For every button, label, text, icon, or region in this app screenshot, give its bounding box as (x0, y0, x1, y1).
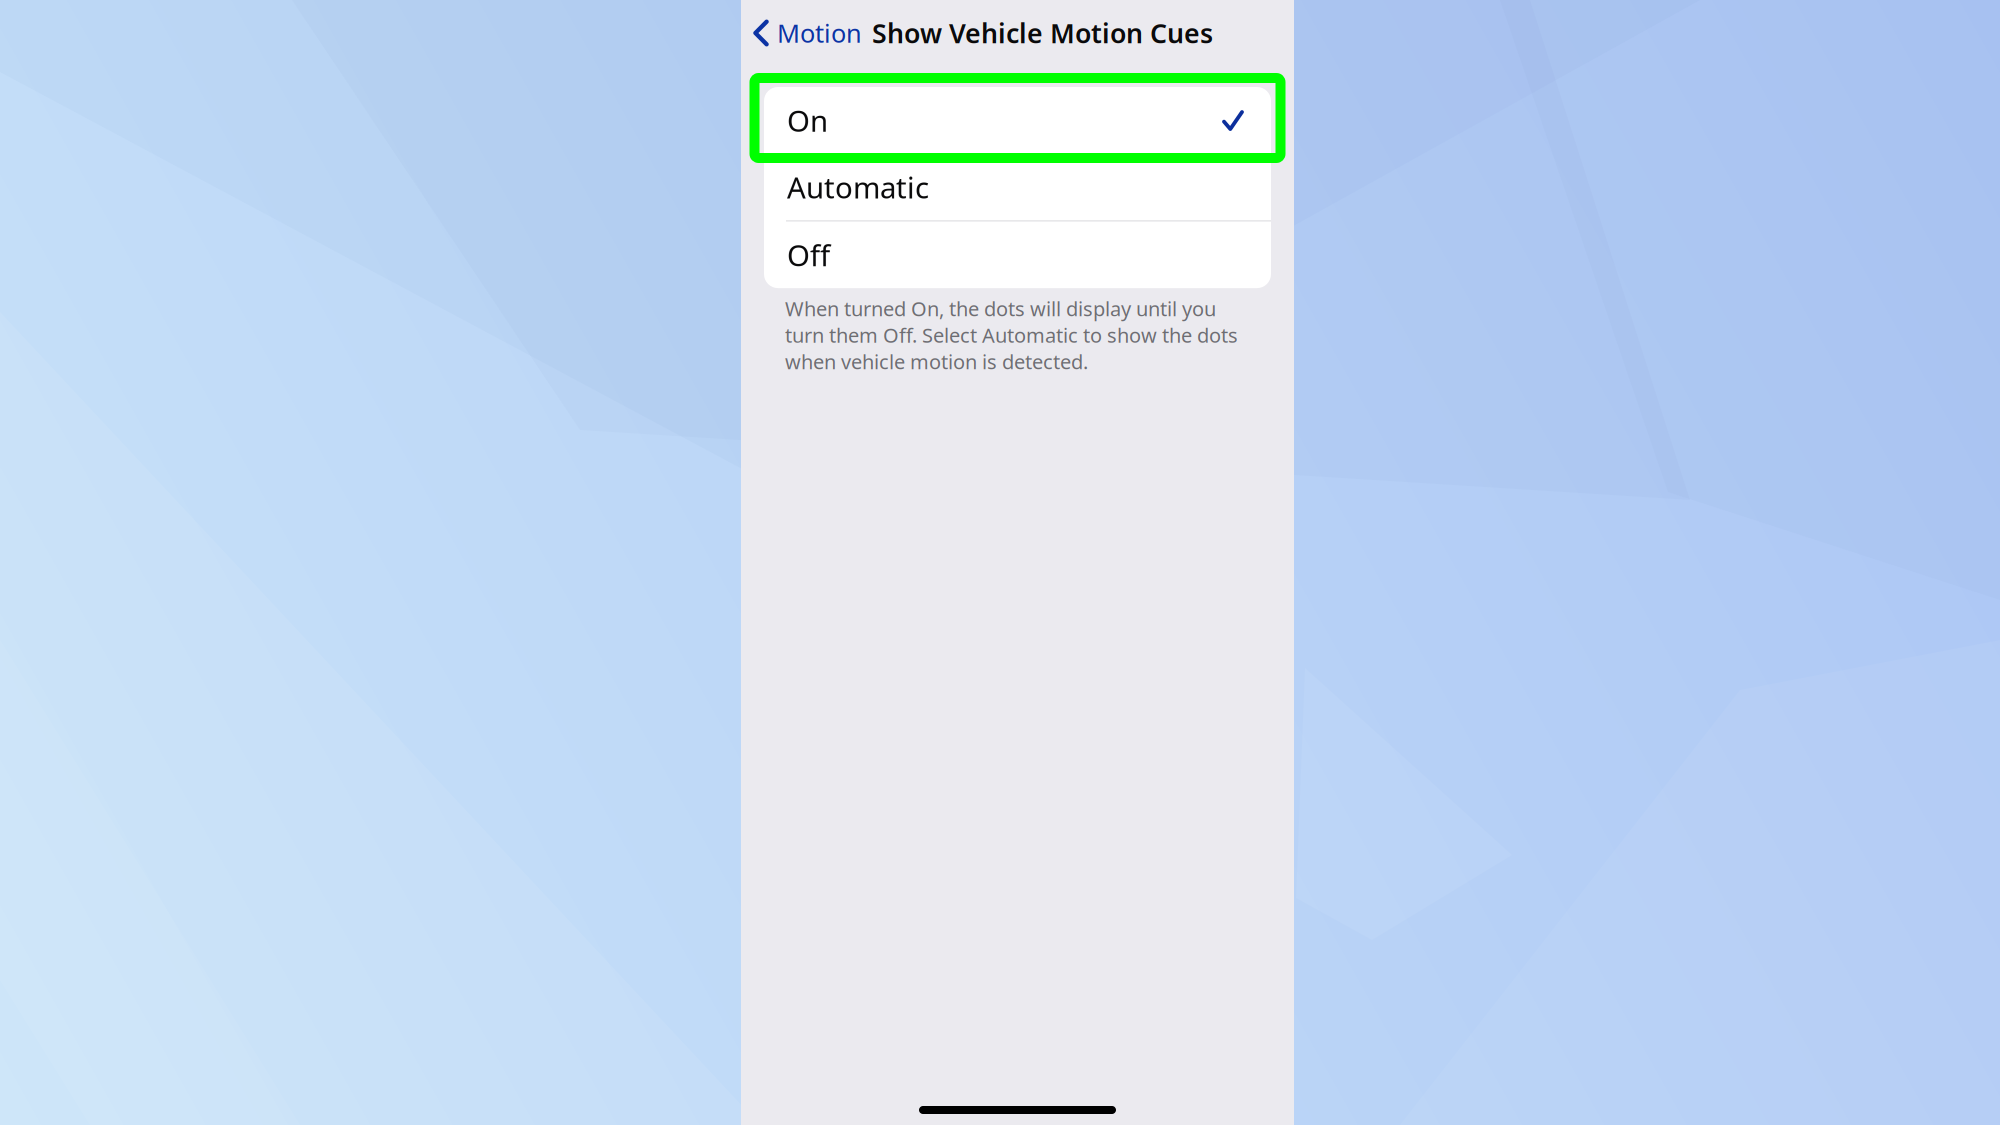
button[interactable]: Automatic (764, 154, 1271, 220)
staticText: On (787, 101, 828, 140)
button[interactable]: On (764, 87, 1271, 154)
button[interactable]: Motion (741, 1, 862, 65)
staticText: When turned On, the dots will display un… (785, 295, 1238, 375)
staticText: Motion (777, 16, 862, 50)
button[interactable]: Off (764, 221, 1271, 288)
staticText: Off (787, 235, 830, 274)
staticText: Automatic (787, 168, 929, 207)
staticText: Show Vehicle Motion Cues (872, 15, 1213, 51)
